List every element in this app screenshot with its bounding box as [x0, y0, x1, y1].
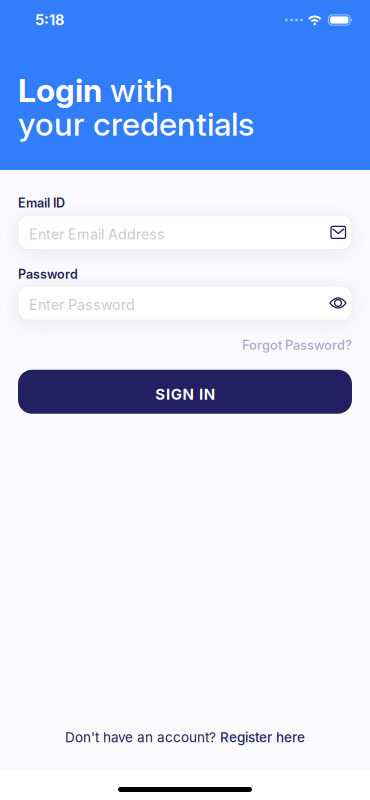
- staticText: with: [110, 71, 174, 110]
- button[interactable]: Enter Email Address: [18, 215, 352, 250]
- staticText: Enter Email Address: [29, 225, 165, 243]
- button[interactable]: Forgot Password?: [242, 337, 352, 353]
- staticText: Don't have an account?: [65, 729, 216, 745]
- staticText: SIGN IN: [155, 385, 215, 403]
- staticText: Login: [18, 71, 102, 110]
- staticText: Register here: [220, 729, 305, 745]
- button[interactable]: SIGN IN: [18, 370, 352, 414]
- staticText: Forgot Password?: [242, 337, 352, 353]
- button[interactable]: Register here: [220, 729, 305, 745]
- staticText: Password: [18, 267, 78, 282]
- button[interactable]: Enter Password: [18, 286, 352, 320]
- staticText: Email ID: [18, 195, 65, 211]
- staticText: your credentials: [18, 105, 254, 143]
- staticText: Enter Password: [29, 296, 135, 313]
- staticText: 5:18: [35, 11, 64, 29]
